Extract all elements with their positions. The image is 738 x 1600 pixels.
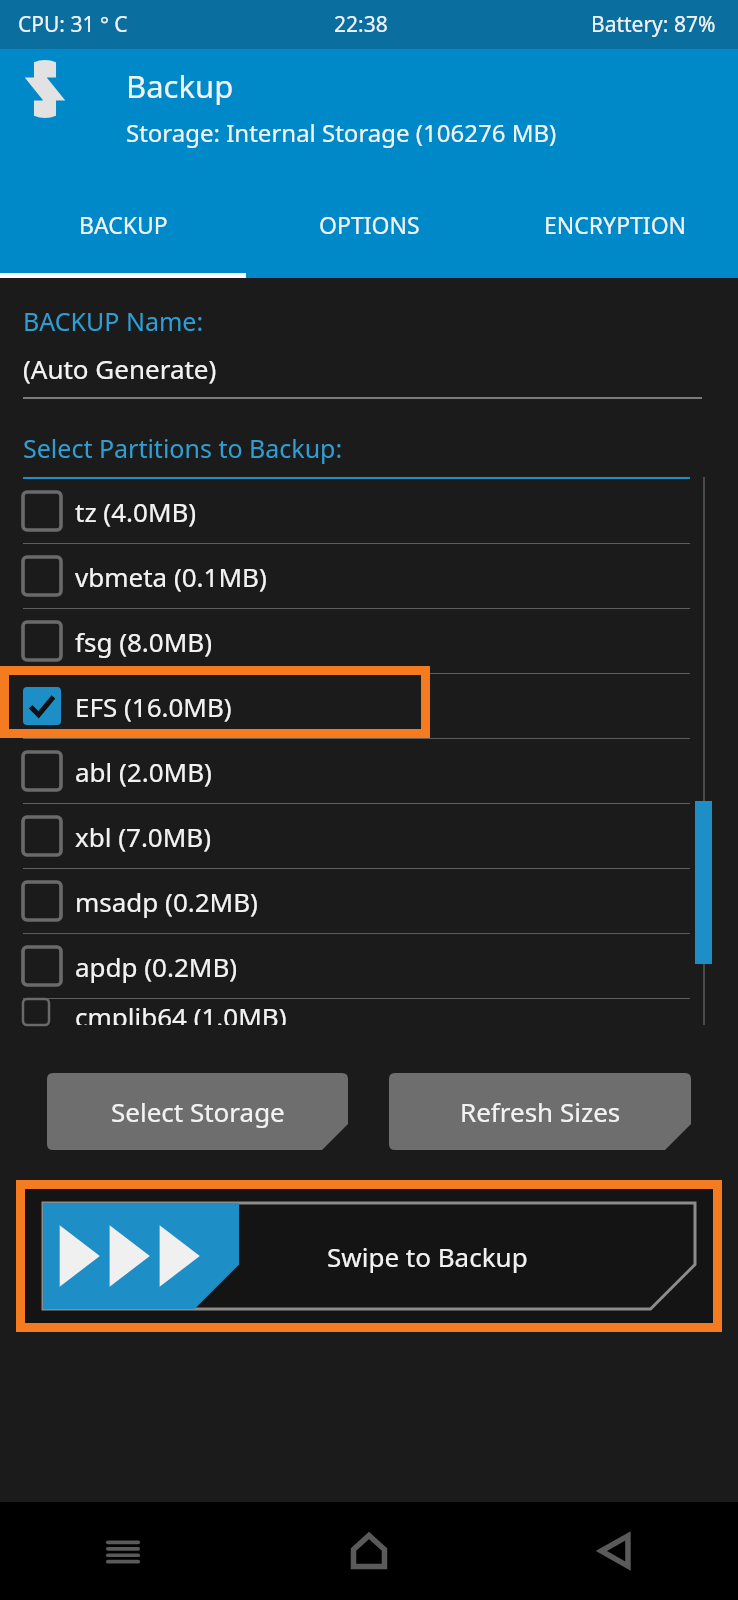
button[interactable]: Select Storage: [47, 1073, 348, 1150]
staticText: cmplib64 (1.0MB): [75, 999, 287, 1025]
staticText: xbl (7.0MB): [75, 819, 212, 854]
staticText: tz (4.0MB): [75, 494, 197, 529]
staticText: Storage: Internal Storage (106276 MB): [126, 116, 557, 149]
staticText: EFS (16.0MB): [75, 689, 232, 724]
staticText: OPTIONS: [319, 209, 420, 240]
button[interactable]: xbl (7.0MB): [0, 804, 738, 868]
button[interactable]: abl (2.0MB): [0, 739, 738, 803]
staticText: BACKUP Name:: [23, 304, 204, 338]
button[interactable]: BACKUP: [0, 184, 246, 278]
button[interactable]: Refresh Sizes: [389, 1073, 691, 1150]
button[interactable]: tz (4.0MB): [0, 479, 738, 543]
button[interactable]: apdp (0.2MB): [0, 934, 738, 998]
button[interactable]: fsg (8.0MB): [0, 609, 738, 673]
staticText: BACKUP: [79, 209, 168, 240]
staticText: msadp (0.2MB): [75, 884, 258, 919]
button[interactable]: Back: [492, 1502, 738, 1600]
button[interactable]: vbmeta (0.1MB): [0, 544, 738, 608]
staticText: Refresh Sizes: [460, 1094, 621, 1129]
staticText: Select Partitions to Backup:: [23, 431, 343, 465]
staticText: Battery: 87%: [591, 10, 716, 39]
other: TWRP logo: [16, 60, 74, 118]
staticText: Backup: [126, 65, 234, 107]
button[interactable]: OPTIONS: [246, 184, 492, 278]
staticText: (Auto Generate): [23, 351, 217, 386]
staticText: CPU: 31 ° C: [18, 10, 128, 39]
button[interactable]: Swipe to Backup: [25, 1189, 713, 1323]
staticText: vbmeta (0.1MB): [75, 559, 267, 594]
staticText: 22:38: [334, 10, 388, 39]
button[interactable]: ENCRYPTION: [492, 184, 738, 278]
button[interactable]: Recent apps: [0, 1502, 246, 1600]
staticText: Select Storage: [111, 1094, 285, 1129]
staticText: Swipe to Backup: [327, 1239, 528, 1274]
button[interactable]: cmplib64 (1.0MB): [0, 999, 738, 1025]
staticText: ENCRYPTION: [544, 209, 687, 240]
staticText: apdp (0.2MB): [75, 949, 238, 984]
button[interactable]: Home: [246, 1502, 492, 1600]
button[interactable]: EFS (16.0MB): [0, 674, 738, 738]
staticText: fsg (8.0MB): [75, 624, 212, 659]
button[interactable]: msadp (0.2MB): [0, 869, 738, 933]
staticText: abl (2.0MB): [75, 754, 212, 789]
